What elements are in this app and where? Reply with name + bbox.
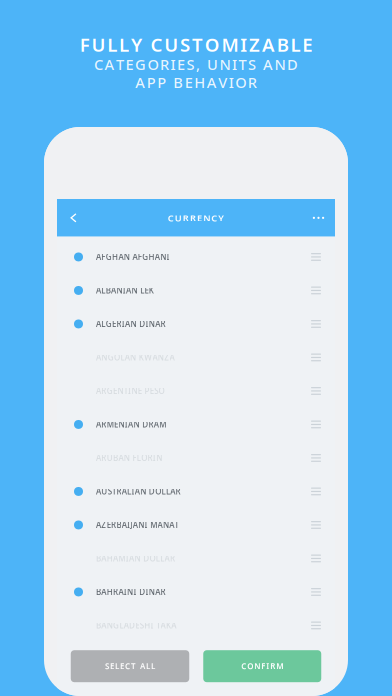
staticText: N (138, 520, 144, 530)
button[interactable]: A (57, 341, 335, 374)
staticText: L (101, 285, 105, 296)
staticText: N (149, 319, 155, 329)
staticText: O (235, 72, 246, 92)
staticText: I (125, 419, 128, 430)
staticText: R (190, 212, 196, 224)
staticText: R (101, 419, 106, 430)
button[interactable]: A (57, 274, 335, 307)
staticText: I (266, 661, 269, 671)
staticText: B (106, 285, 111, 296)
button[interactable]: More options (302, 199, 335, 237)
staticText: L (120, 352, 124, 363)
staticText: S (105, 661, 109, 671)
staticText: A (125, 352, 130, 363)
staticText: A (161, 620, 166, 631)
staticText: A (113, 553, 118, 564)
button[interactable]: B (57, 690, 335, 696)
staticText: E (125, 54, 133, 74)
staticText: L (156, 553, 160, 564)
staticText: T (156, 620, 160, 631)
staticText: S (186, 54, 194, 74)
staticText: I (170, 54, 175, 74)
staticText: O (205, 32, 220, 57)
staticText: H (107, 553, 113, 564)
staticText: A (155, 252, 160, 262)
staticText: I (131, 486, 134, 497)
staticText: I (133, 587, 136, 597)
button[interactable]: A (57, 475, 335, 508)
staticText: R (183, 212, 189, 224)
staticText: T (131, 661, 136, 671)
staticText: H (107, 587, 113, 597)
staticText: A (170, 486, 175, 497)
button[interactable]: B (57, 575, 335, 609)
staticText: B (96, 553, 101, 564)
staticText: E (302, 32, 312, 57)
button[interactable]: A (57, 374, 335, 408)
staticText: F (261, 661, 265, 671)
staticText: N (101, 352, 107, 363)
staticText: R (101, 453, 106, 463)
button[interactable]: A (57, 408, 335, 441)
staticText: M (107, 419, 114, 430)
staticText: A (140, 661, 145, 671)
staticText: O (159, 386, 165, 396)
staticText: G (108, 352, 114, 363)
staticText: R (161, 587, 166, 597)
staticText: R (160, 54, 169, 74)
staticText: O (247, 661, 253, 671)
button[interactable]: B (57, 542, 335, 575)
staticText: L (160, 553, 164, 564)
staticText: I (124, 587, 127, 597)
staticText: A (104, 54, 114, 74)
staticText: W (144, 352, 152, 363)
button[interactable]: A (57, 307, 335, 341)
staticText: S (108, 486, 112, 497)
staticText: R (101, 386, 106, 396)
button[interactable]: C (203, 650, 321, 682)
staticText: L (166, 486, 170, 497)
staticText: T (124, 386, 128, 396)
staticText: A (96, 352, 101, 363)
staticText: C (150, 32, 162, 57)
staticText: E (138, 386, 142, 396)
staticText: C (211, 212, 217, 224)
staticText: A (154, 419, 159, 430)
staticText: F (138, 252, 142, 262)
staticText: F (132, 453, 136, 463)
staticText: H (194, 72, 205, 92)
staticText: H (112, 252, 118, 262)
staticText: L (140, 285, 144, 296)
staticText: L (115, 661, 119, 671)
staticText: N (124, 453, 130, 463)
staticText: N (124, 252, 130, 262)
staticText: I (126, 553, 129, 564)
staticText: N (131, 285, 137, 296)
staticText: R (148, 419, 153, 430)
staticText: T (116, 54, 124, 74)
button[interactable]: A (57, 508, 335, 542)
button[interactable]: A (57, 240, 335, 274)
staticText: D (143, 553, 149, 564)
button[interactable]: S (71, 650, 189, 682)
staticText: T (175, 520, 179, 530)
staticText: B (277, 32, 289, 57)
staticText: M (118, 553, 125, 564)
staticText: M (159, 419, 166, 430)
staticText: C (94, 54, 103, 74)
staticText: E (150, 386, 154, 396)
button[interactable]: Back (57, 199, 90, 237)
staticText: R (161, 319, 166, 329)
staticText: N (158, 352, 164, 363)
staticText: O (149, 553, 155, 564)
staticText: A (122, 520, 127, 530)
